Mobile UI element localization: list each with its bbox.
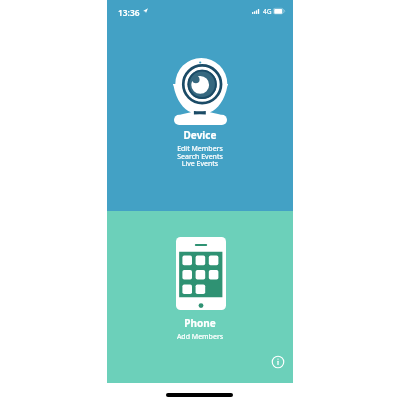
staticText: Edit Members Search Events Live Events (107, 144, 293, 168)
button[interactable]: Phone (107, 211, 293, 383)
staticText: Device (107, 128, 293, 142)
staticText: 4G (263, 7, 272, 16)
staticText: Add Members (107, 332, 293, 342)
staticText: 13:36 (118, 7, 140, 18)
button[interactable]: Info (271, 355, 285, 369)
button[interactable]: 13:36 (107, 0, 293, 211)
staticText: Phone (107, 316, 293, 330)
